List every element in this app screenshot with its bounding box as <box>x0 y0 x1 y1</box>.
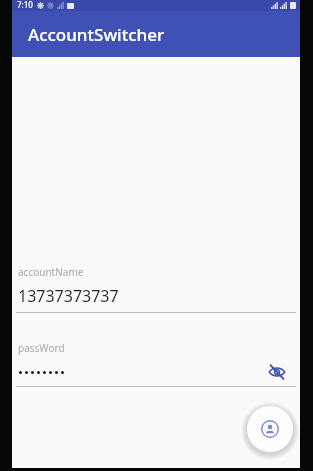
staticText: 13737373737 <box>18 285 119 307</box>
staticText: accountName <box>18 265 84 279</box>
staticText: passWord <box>18 341 65 355</box>
button[interactable]: Switch account <box>247 406 293 452</box>
staticText: AccountSwitcher <box>28 23 165 46</box>
button[interactable]: accountName <box>12 265 300 313</box>
staticText: 7:10 <box>17 0 33 10</box>
button[interactable]: Toggle password visibility <box>264 361 290 383</box>
